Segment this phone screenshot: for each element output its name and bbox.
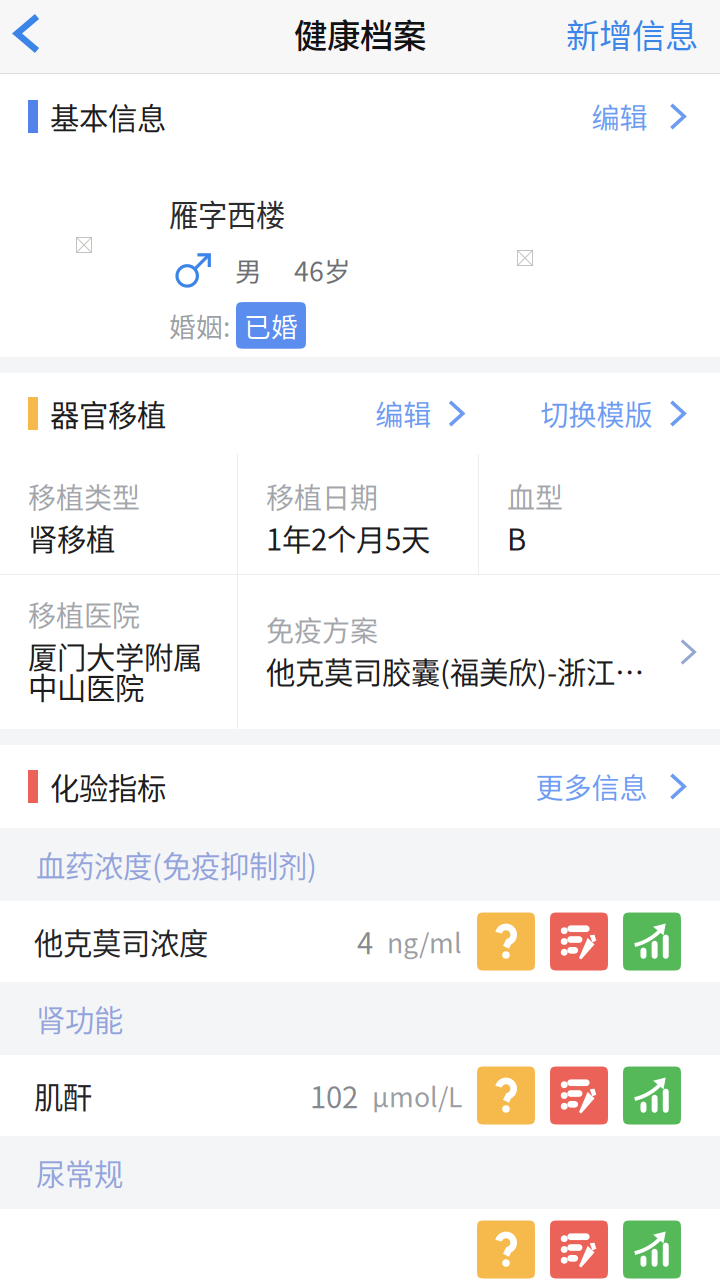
staticText: 新增信息	[566, 9, 698, 58]
button[interactable]: 指标说明	[477, 912, 535, 970]
button[interactable]: 录入数据	[550, 912, 608, 970]
staticText: 移植日期	[266, 476, 378, 516]
staticText: 健康档案	[294, 9, 426, 58]
staticText: 102	[310, 1074, 358, 1117]
staticText: 免疫方案	[266, 609, 378, 649]
staticText: 基本信息	[50, 95, 166, 138]
staticText: 器官移植	[50, 392, 166, 435]
staticText: 1年2个月5天	[266, 516, 430, 559]
image	[517, 250, 533, 266]
button[interactable]: 查看趋势	[623, 1220, 681, 1278]
staticText: ng/ml	[387, 922, 462, 961]
staticText: 厦门大学附属 中山医院	[28, 634, 202, 707]
staticText: μmol/L	[372, 1076, 462, 1115]
staticText: 雁字西楼	[169, 192, 285, 234]
staticText: 编辑	[375, 393, 431, 434]
staticText: 46岁	[294, 250, 351, 289]
button[interactable]: 查看趋势	[623, 912, 681, 970]
staticText: 4	[357, 920, 373, 963]
button[interactable]: 查看趋势	[623, 1066, 681, 1124]
staticText: 肌酐	[34, 1074, 92, 1117]
staticText: 切换模版	[541, 393, 653, 434]
staticText: 血药浓度(免疫抑制剂)	[36, 843, 317, 886]
button[interactable]: 指标说明	[477, 1066, 535, 1124]
button[interactable]: 返回	[0, 0, 64, 74]
staticText: 他克莫司浓度	[34, 920, 208, 963]
staticText: 血型	[507, 476, 563, 516]
staticText: 更多信息	[536, 766, 648, 807]
image	[76, 237, 92, 253]
staticText: 化验指标	[50, 765, 166, 808]
staticText: 肾移植	[28, 516, 115, 559]
staticText: B	[507, 516, 526, 559]
staticText: 移植医院	[28, 594, 140, 634]
staticText: 肾功能	[36, 997, 123, 1040]
button[interactable]: 切换模版	[527, 373, 720, 454]
staticText: 已婚	[244, 306, 298, 345]
button[interactable]: 免疫方案	[238, 575, 720, 729]
staticText: 婚姻:	[169, 306, 230, 345]
button[interactable]: 录入数据	[550, 1220, 608, 1278]
button[interactable]: 更多信息	[514, 745, 720, 828]
button[interactable]: 指标说明	[477, 1220, 535, 1278]
staticText: 他克莫司胶囊(福美欣)-浙江海正	[266, 649, 671, 692]
button[interactable]: 编辑	[570, 74, 720, 159]
staticText: 移植类型	[28, 476, 140, 516]
button[interactable]: 编辑	[361, 373, 481, 454]
staticText: 男	[235, 250, 262, 289]
staticText: 编辑	[592, 96, 648, 137]
button[interactable]: 录入数据	[550, 1066, 608, 1124]
button[interactable]: 新增信息	[542, 0, 720, 74]
staticText: 尿常规	[36, 1151, 123, 1194]
